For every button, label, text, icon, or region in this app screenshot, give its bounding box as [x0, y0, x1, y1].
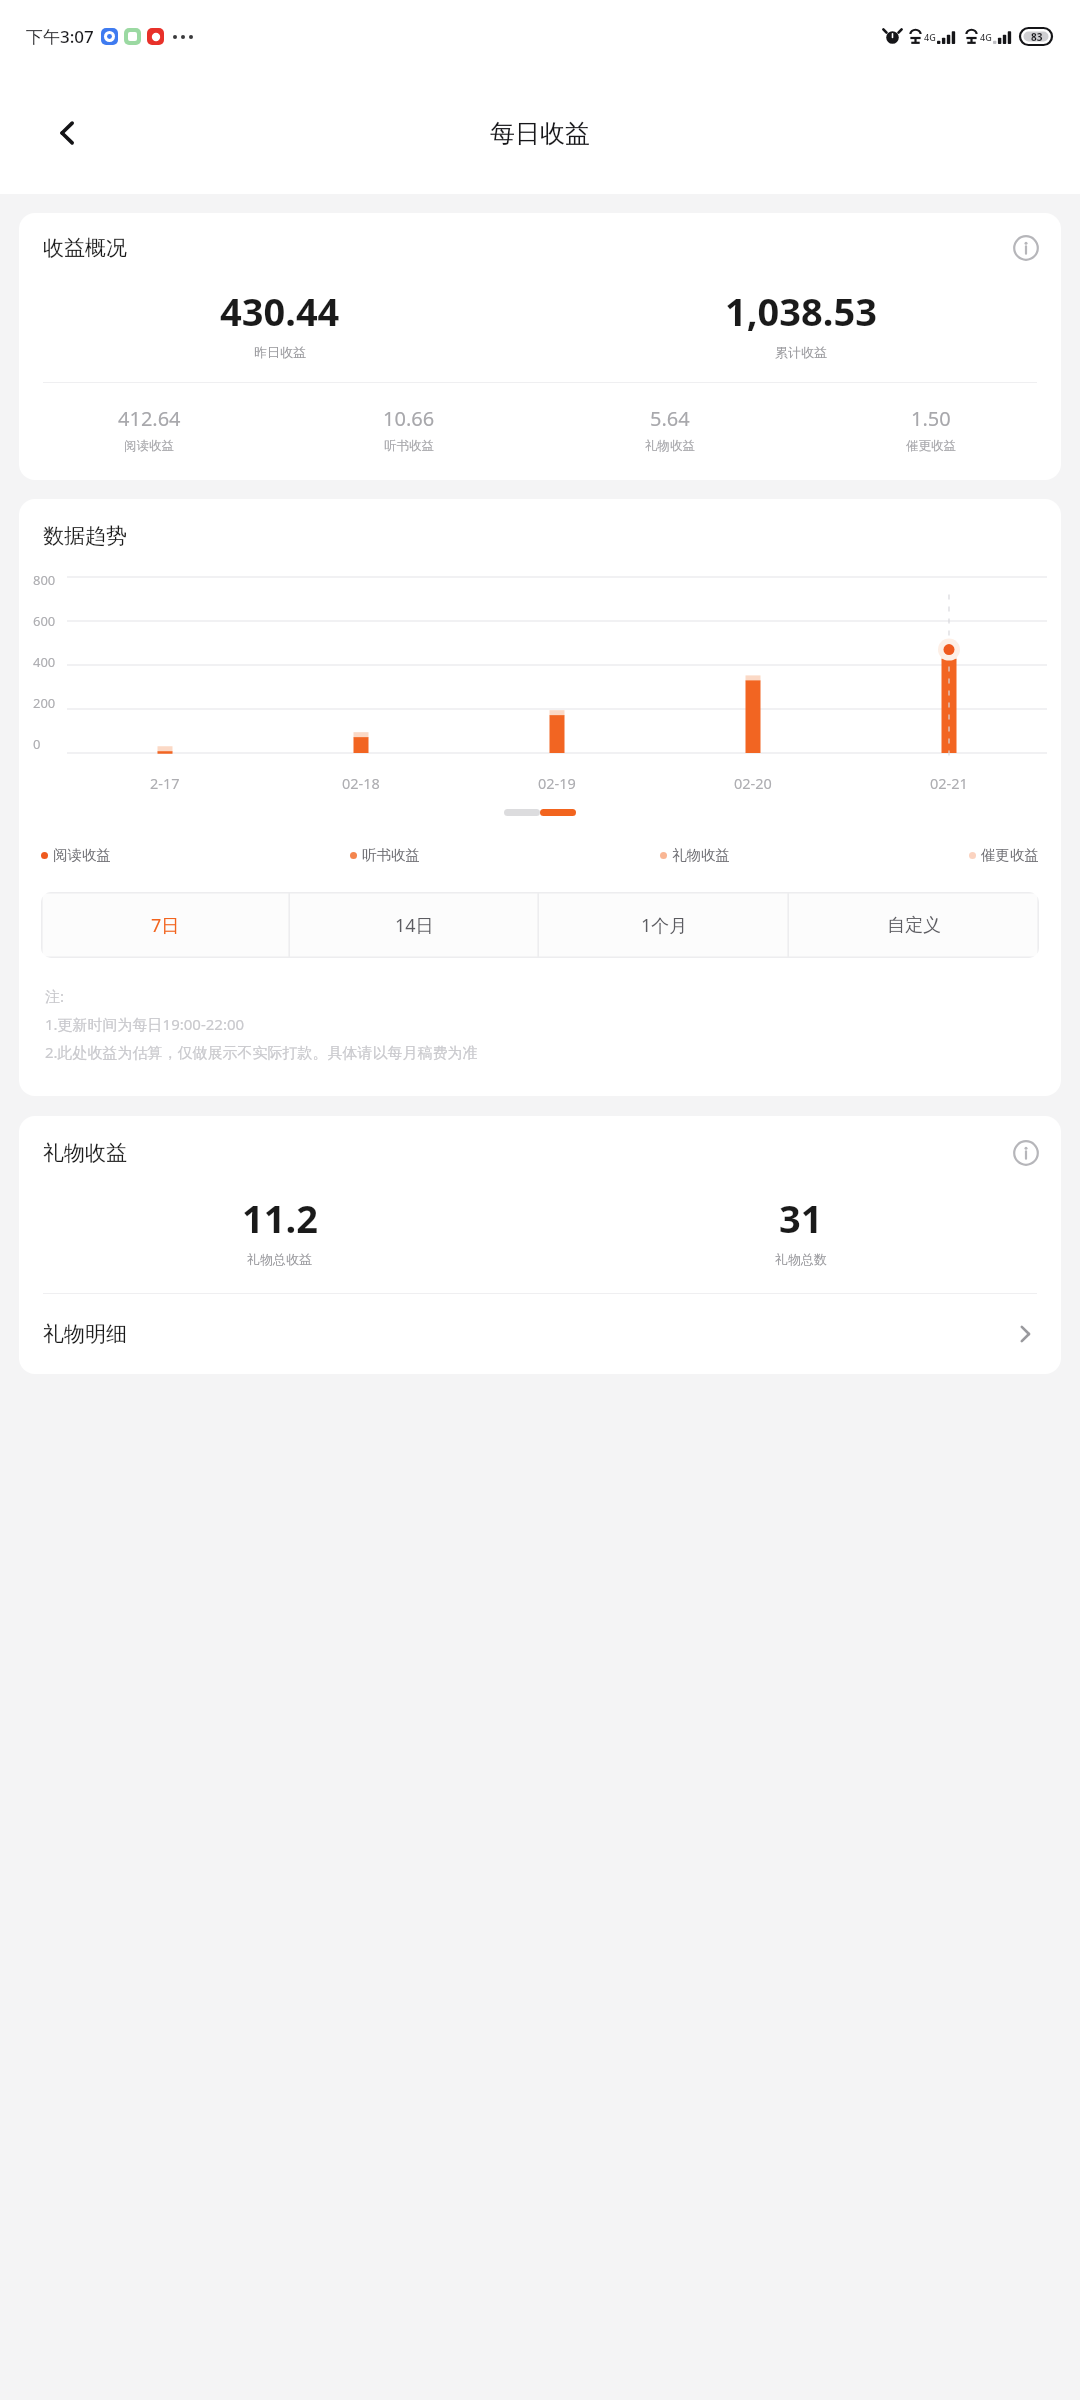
button[interactable]: 说明	[1013, 235, 1039, 261]
button[interactable]: 7日	[41, 892, 290, 958]
staticText: 阅读收益	[124, 438, 174, 454]
staticText: 02-20	[734, 773, 772, 793]
staticText: 听书收益	[384, 438, 434, 454]
staticText: 800	[33, 571, 56, 589]
staticText: 礼物收益	[672, 846, 730, 864]
staticText: 1.50	[911, 405, 951, 432]
staticText: 7日	[151, 913, 180, 938]
staticText: 听书收益	[362, 846, 420, 864]
staticText: 5.64	[650, 405, 690, 432]
staticText: 催更收益	[981, 846, 1039, 864]
staticText: 600	[33, 612, 56, 630]
staticText: 礼物收益	[43, 1140, 127, 1166]
button[interactable]: 说明	[1013, 1140, 1039, 1166]
button[interactable]: 1个月	[539, 892, 789, 958]
staticText: 0	[33, 735, 41, 753]
staticText: 02-19	[538, 773, 576, 793]
staticText: 1,038.53	[725, 285, 877, 337]
staticText: 礼物总收益	[247, 1251, 312, 1267]
staticText: 下午3:07	[26, 25, 94, 48]
staticText: 催更收益	[906, 438, 956, 454]
button[interactable]: 返回	[42, 107, 94, 159]
button[interactable]: 自定义	[789, 892, 1039, 958]
staticText: 每日收益	[490, 118, 590, 149]
button[interactable]: 听书收益	[350, 846, 420, 864]
staticText: 400	[33, 653, 56, 671]
staticText: 83	[1031, 30, 1043, 44]
button[interactable]: 礼物明细	[19, 1294, 1061, 1374]
staticText: 10.66	[383, 405, 435, 432]
staticText: 02-18	[342, 773, 380, 793]
staticText: 阅读收益	[53, 846, 111, 864]
staticText: 11.2	[242, 1192, 318, 1244]
button[interactable]: 阅读收益	[41, 846, 111, 864]
staticText: 礼物收益	[645, 438, 695, 454]
staticText: 礼物明细	[43, 1321, 127, 1347]
staticText: 2.此处收益为估算，仅做展示不实际打款。具体请以每月稿费为准	[45, 1042, 478, 1062]
button[interactable]: 14日	[290, 892, 539, 958]
staticText: 1.更新时间为每日19:00-22:00	[45, 1014, 245, 1034]
staticText: 累计收益	[775, 344, 827, 360]
staticText: 4G	[980, 31, 992, 43]
staticText: 礼物总数	[775, 1251, 827, 1267]
staticText: 4G	[924, 31, 936, 43]
staticText: 昨日收益	[254, 344, 306, 360]
staticText: 200	[33, 694, 56, 712]
staticText: 2-17	[150, 773, 180, 793]
staticText: 02-21	[930, 773, 968, 793]
staticText: 31	[779, 1192, 823, 1244]
staticText: 自定义	[887, 914, 941, 937]
staticText: 430.44	[220, 285, 340, 337]
button[interactable]: 礼物收益	[660, 846, 730, 864]
staticText: 数据趋势	[43, 523, 127, 549]
staticText: 收益概况	[43, 235, 127, 261]
staticText: 1个月	[641, 913, 688, 938]
staticText: 14日	[395, 913, 434, 938]
staticText: 412.64	[118, 405, 181, 432]
staticText: 注:	[45, 986, 65, 1006]
button[interactable]: 催更收益	[969, 846, 1039, 864]
